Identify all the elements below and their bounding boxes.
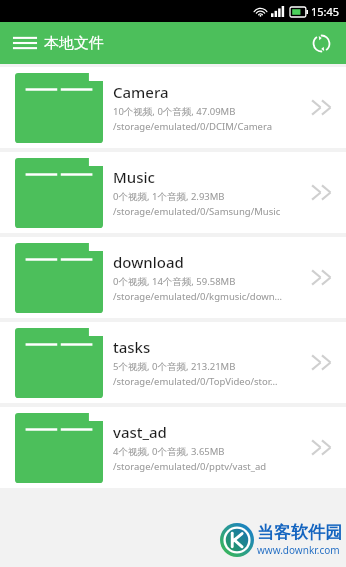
- staticText: 本地文件: [44, 34, 104, 53]
- staticText: /storage/emulated/0/kgmusic/down…: [113, 290, 283, 303]
- staticText: 4个视频, 0个音频, 3.65MB: [113, 445, 225, 458]
- button[interactable]: Refresh: [306, 28, 336, 58]
- staticText: Music: [113, 167, 155, 187]
- button[interactable]: download: [0, 237, 346, 318]
- staticText: Camera: [113, 82, 169, 102]
- staticText: 0个视频, 1个音频, 2.93MB: [113, 190, 225, 203]
- button[interactable]: Open: [300, 152, 346, 233]
- button[interactable]: Open: [300, 322, 346, 403]
- staticText: download: [113, 252, 184, 272]
- staticText: /storage/emulated/0/TopVideo/stor…: [113, 375, 278, 388]
- button[interactable]: Menu: [10, 28, 40, 58]
- button[interactable]: Open: [300, 237, 346, 318]
- staticText: 10个视频, 0个音频, 47.09MB: [113, 105, 236, 118]
- staticText: www.downkr.com: [257, 543, 340, 557]
- staticText: 15:45: [311, 4, 340, 19]
- staticText: tasks: [113, 337, 151, 357]
- button[interactable]: vast_ad: [0, 407, 346, 488]
- staticText: /storage/emulated/0/Samsung/Music: [113, 205, 281, 218]
- staticText: 当客软件园: [257, 522, 342, 543]
- staticText: /storage/emulated/0/pptv/vast_ad: [113, 460, 267, 473]
- staticText: 0个视频, 14个音频, 59.58MB: [113, 275, 236, 288]
- button[interactable]: tasks: [0, 322, 346, 403]
- button[interactable]: Music: [0, 152, 346, 233]
- button[interactable]: Open: [300, 407, 346, 488]
- staticText: 5个视频, 0个音频, 213.21MB: [113, 360, 236, 373]
- button[interactable]: Camera: [0, 67, 346, 148]
- button[interactable]: Open: [300, 67, 346, 148]
- staticText: vast_ad: [113, 422, 167, 442]
- staticText: /storage/emulated/0/DCIM/Camera: [113, 120, 273, 133]
